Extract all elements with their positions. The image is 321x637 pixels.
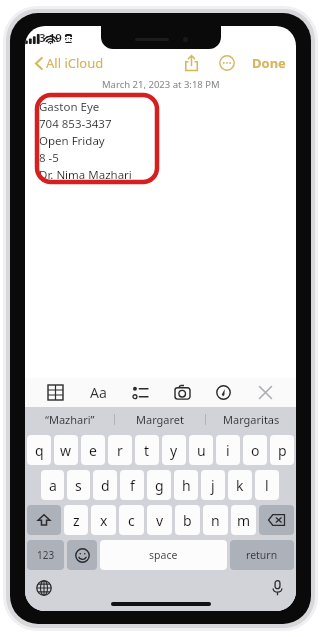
staticText: v (156, 511, 164, 530)
button[interactable]: Share (181, 51, 202, 75)
staticText: l (265, 476, 269, 495)
button[interactable]: e (81, 435, 105, 465)
button[interactable]: Backspace (259, 505, 294, 535)
button[interactable]: h (174, 470, 198, 500)
button[interactable]: space (100, 540, 227, 570)
staticText: 25 (64, 34, 73, 44)
button[interactable]: k (228, 470, 252, 500)
staticText: All iCloud (46, 54, 104, 72)
button[interactable]: r (108, 435, 132, 465)
staticText: 123 (37, 548, 55, 562)
staticText: a (49, 476, 57, 495)
button[interactable]: f (120, 470, 144, 500)
staticText: k (236, 476, 244, 495)
button[interactable]: m (231, 505, 256, 535)
button[interactable]: w (54, 435, 78, 465)
button[interactable]: p (270, 435, 294, 465)
staticText: n (211, 511, 220, 530)
staticText: f (130, 476, 135, 495)
staticText: return (246, 548, 278, 562)
button[interactable]: Dictate (269, 577, 286, 599)
button[interactable]: return (230, 540, 294, 570)
button[interactable]: Checklist (130, 382, 151, 403)
button[interactable]: Camera (172, 382, 193, 403)
button[interactable]: o (243, 435, 267, 465)
button[interactable]: 123 (27, 540, 64, 570)
button[interactable]: Margaritas (206, 407, 296, 431)
button[interactable]: “Mazhari” (25, 407, 114, 431)
button[interactable]: Aa (87, 380, 110, 405)
button[interactable]: z (64, 505, 88, 535)
staticText: q (35, 441, 44, 460)
staticText: u (197, 441, 206, 460)
staticText: 8 -5 (39, 150, 59, 166)
button[interactable]: Markup (213, 382, 234, 403)
button[interactable]: u (189, 435, 213, 465)
staticText: Gaston Eye (39, 99, 100, 115)
staticText: 3:19 (39, 30, 62, 46)
button[interactable]: v (147, 505, 172, 535)
staticText: d (101, 476, 110, 495)
staticText: h (182, 476, 191, 495)
button[interactable]: s (67, 470, 90, 500)
button[interactable]: l (255, 470, 279, 500)
staticText: g (155, 476, 164, 495)
button[interactable]: y (162, 435, 186, 465)
staticText: o (251, 441, 260, 460)
staticText: m (237, 511, 251, 530)
button[interactable]: t (135, 435, 159, 465)
staticText: x (100, 511, 108, 530)
button[interactable]: q (27, 435, 51, 465)
button[interactable]: More options (216, 52, 238, 74)
button[interactable]: Close keyboard (255, 382, 276, 403)
staticText: z (73, 511, 80, 530)
button[interactable]: b (175, 505, 200, 535)
button[interactable]: Table (45, 382, 66, 403)
button[interactable]: i (216, 435, 240, 465)
staticText: 704 853-3437 (39, 116, 112, 132)
staticText: i (226, 441, 230, 460)
staticText: Open Friday (39, 133, 105, 149)
button[interactable]: d (93, 470, 117, 500)
staticText: r (117, 441, 123, 460)
button[interactable]: n (203, 505, 228, 535)
staticText: Dr. Nima Mazhari (39, 167, 132, 183)
button[interactable]: Margaret (115, 407, 205, 431)
staticText: w (60, 441, 72, 460)
button[interactable]: j (201, 470, 225, 500)
staticText: March 21, 2023 at 3:18 PM (102, 78, 220, 91)
staticText: t (144, 441, 150, 460)
button[interactable]: a (41, 470, 64, 500)
staticText: p (278, 441, 287, 460)
button[interactable]: Change keyboard language (33, 577, 55, 599)
staticText: space (149, 548, 178, 562)
button[interactable]: All iCloud (31, 52, 108, 74)
staticText: y (170, 441, 178, 460)
button[interactable]: g (147, 470, 171, 500)
button[interactable]: Shift (27, 505, 61, 535)
button[interactable]: c (119, 505, 144, 535)
staticText: j (211, 476, 215, 495)
staticText: Aa (90, 383, 107, 402)
staticText: Margaritas (223, 412, 280, 427)
staticText: e (89, 441, 97, 460)
staticText: Margaret (136, 412, 185, 427)
staticText: “Mazhari” (45, 412, 95, 427)
staticText: b (183, 511, 192, 530)
button[interactable]: Emoji (67, 540, 97, 570)
staticText: Done (252, 54, 286, 72)
button[interactable]: x (91, 505, 116, 535)
button[interactable]: Done (250, 52, 288, 74)
staticText: c (128, 511, 135, 530)
staticText: s (75, 476, 82, 495)
